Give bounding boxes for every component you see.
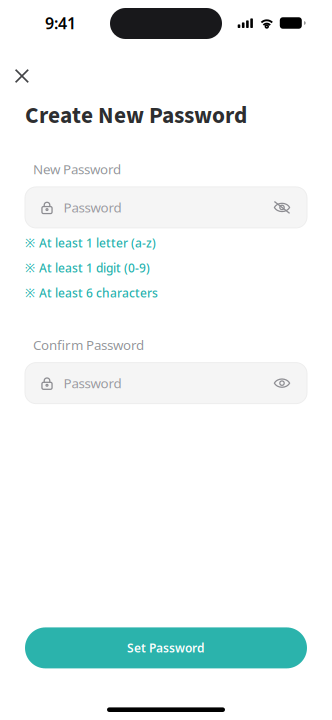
staticText: Create New Password <box>25 99 247 132</box>
staticText: Set Password <box>127 640 205 656</box>
staticText: New Password <box>33 160 121 178</box>
button[interactable]: Show password <box>264 189 300 225</box>
staticText: At least 1 digit (0-9) <box>39 260 150 276</box>
button[interactable]: Set Password <box>25 627 307 668</box>
button[interactable]: Hide password <box>264 365 300 401</box>
staticText: ※ <box>25 260 35 276</box>
staticText: Password <box>63 199 121 216</box>
staticText: Confirm Password <box>33 336 144 354</box>
staticText: At least 1 letter (a-z) <box>39 235 156 251</box>
staticText: ※ <box>25 235 35 251</box>
staticText: ※ <box>25 285 35 301</box>
button[interactable]: Close <box>15 62 45 90</box>
staticText: Password <box>63 374 121 392</box>
staticText: 9:41 <box>45 12 76 34</box>
staticText: At least 6 characters <box>39 285 158 301</box>
